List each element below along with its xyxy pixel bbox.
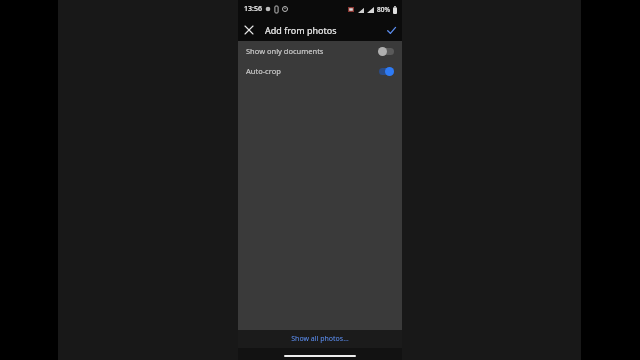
button[interactable]: Auto-crop bbox=[238, 61, 402, 81]
button[interactable]: Show only documents bbox=[238, 41, 402, 61]
staticText: 13:56 bbox=[244, 4, 262, 14]
button[interactable]: Close bbox=[238, 19, 260, 41]
staticText: 80% bbox=[377, 5, 390, 14]
staticText: Show only documents bbox=[246, 46, 324, 56]
button[interactable]: Confirm bbox=[380, 19, 402, 41]
staticText: Show all photos… bbox=[291, 334, 349, 344]
staticText: Add from photos bbox=[265, 24, 337, 36]
staticText: Auto-crop bbox=[246, 66, 281, 76]
button[interactable]: Show all photos… bbox=[283, 331, 357, 347]
